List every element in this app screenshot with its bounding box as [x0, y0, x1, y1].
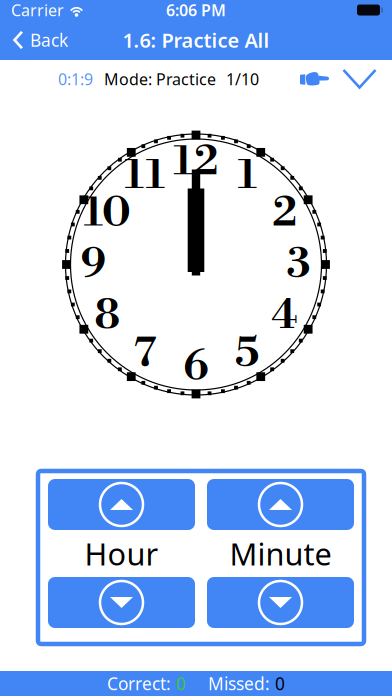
staticText: Mode: Practice — [104, 68, 216, 90]
button[interactable]: Back — [0, 20, 76, 60]
staticText: 5 — [235, 327, 260, 379]
staticText: Hour — [84, 533, 158, 574]
staticText: 0 — [275, 672, 285, 695]
staticText: 6 — [183, 341, 209, 393]
button[interactable]: Decrease — [48, 577, 195, 628]
staticText: 1.6: Practice All — [122, 27, 269, 53]
staticText: 10 — [84, 187, 131, 239]
staticText: 9 — [80, 239, 106, 290]
button[interactable]: Check answer — [342, 68, 377, 89]
staticText: Missed: — [208, 672, 275, 695]
staticText: 7 — [133, 327, 156, 379]
button[interactable]: Hint — [300, 63, 329, 94]
staticText: 8 — [94, 290, 120, 342]
staticText: Back — [30, 28, 68, 51]
staticText: 3 — [286, 239, 310, 290]
staticText: Minute — [229, 533, 331, 574]
staticText: 1 — [238, 150, 257, 202]
staticText: Correct: — [107, 672, 176, 695]
staticText: Carrier — [11, 0, 64, 21]
staticText: 0 — [176, 672, 186, 695]
staticText: 1/10 — [226, 68, 259, 90]
staticText: 4 — [271, 290, 298, 342]
staticText: 0:1:9 — [58, 68, 93, 90]
staticText: 2 — [272, 187, 297, 239]
staticText: 6:06 PM — [166, 0, 226, 21]
staticText: 11 — [125, 150, 165, 202]
button[interactable]: Increase — [207, 479, 354, 530]
button[interactable]: Decrease — [207, 577, 354, 628]
staticText: 12 — [173, 136, 218, 188]
button[interactable]: Increase — [48, 479, 195, 530]
